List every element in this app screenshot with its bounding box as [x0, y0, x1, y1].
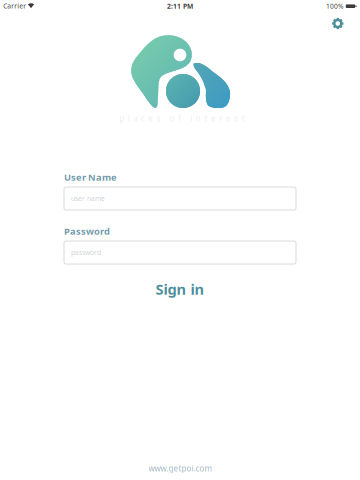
staticText: user name: [71, 194, 105, 203]
staticText: places of interest: [119, 113, 245, 124]
staticText: 2:11 PM: [167, 2, 193, 11]
staticText: 100%: [326, 2, 344, 11]
staticText: Password: [64, 225, 110, 237]
staticText: Sign in: [155, 279, 204, 299]
staticText: www.getpoi.com: [148, 463, 211, 474]
button[interactable]: Sign in: [141, 273, 218, 305]
staticText: password: [71, 248, 101, 257]
button[interactable]: Settings: [325, 11, 351, 35]
staticText: Carrier: [3, 2, 26, 10]
staticText: User Name: [64, 171, 117, 183]
